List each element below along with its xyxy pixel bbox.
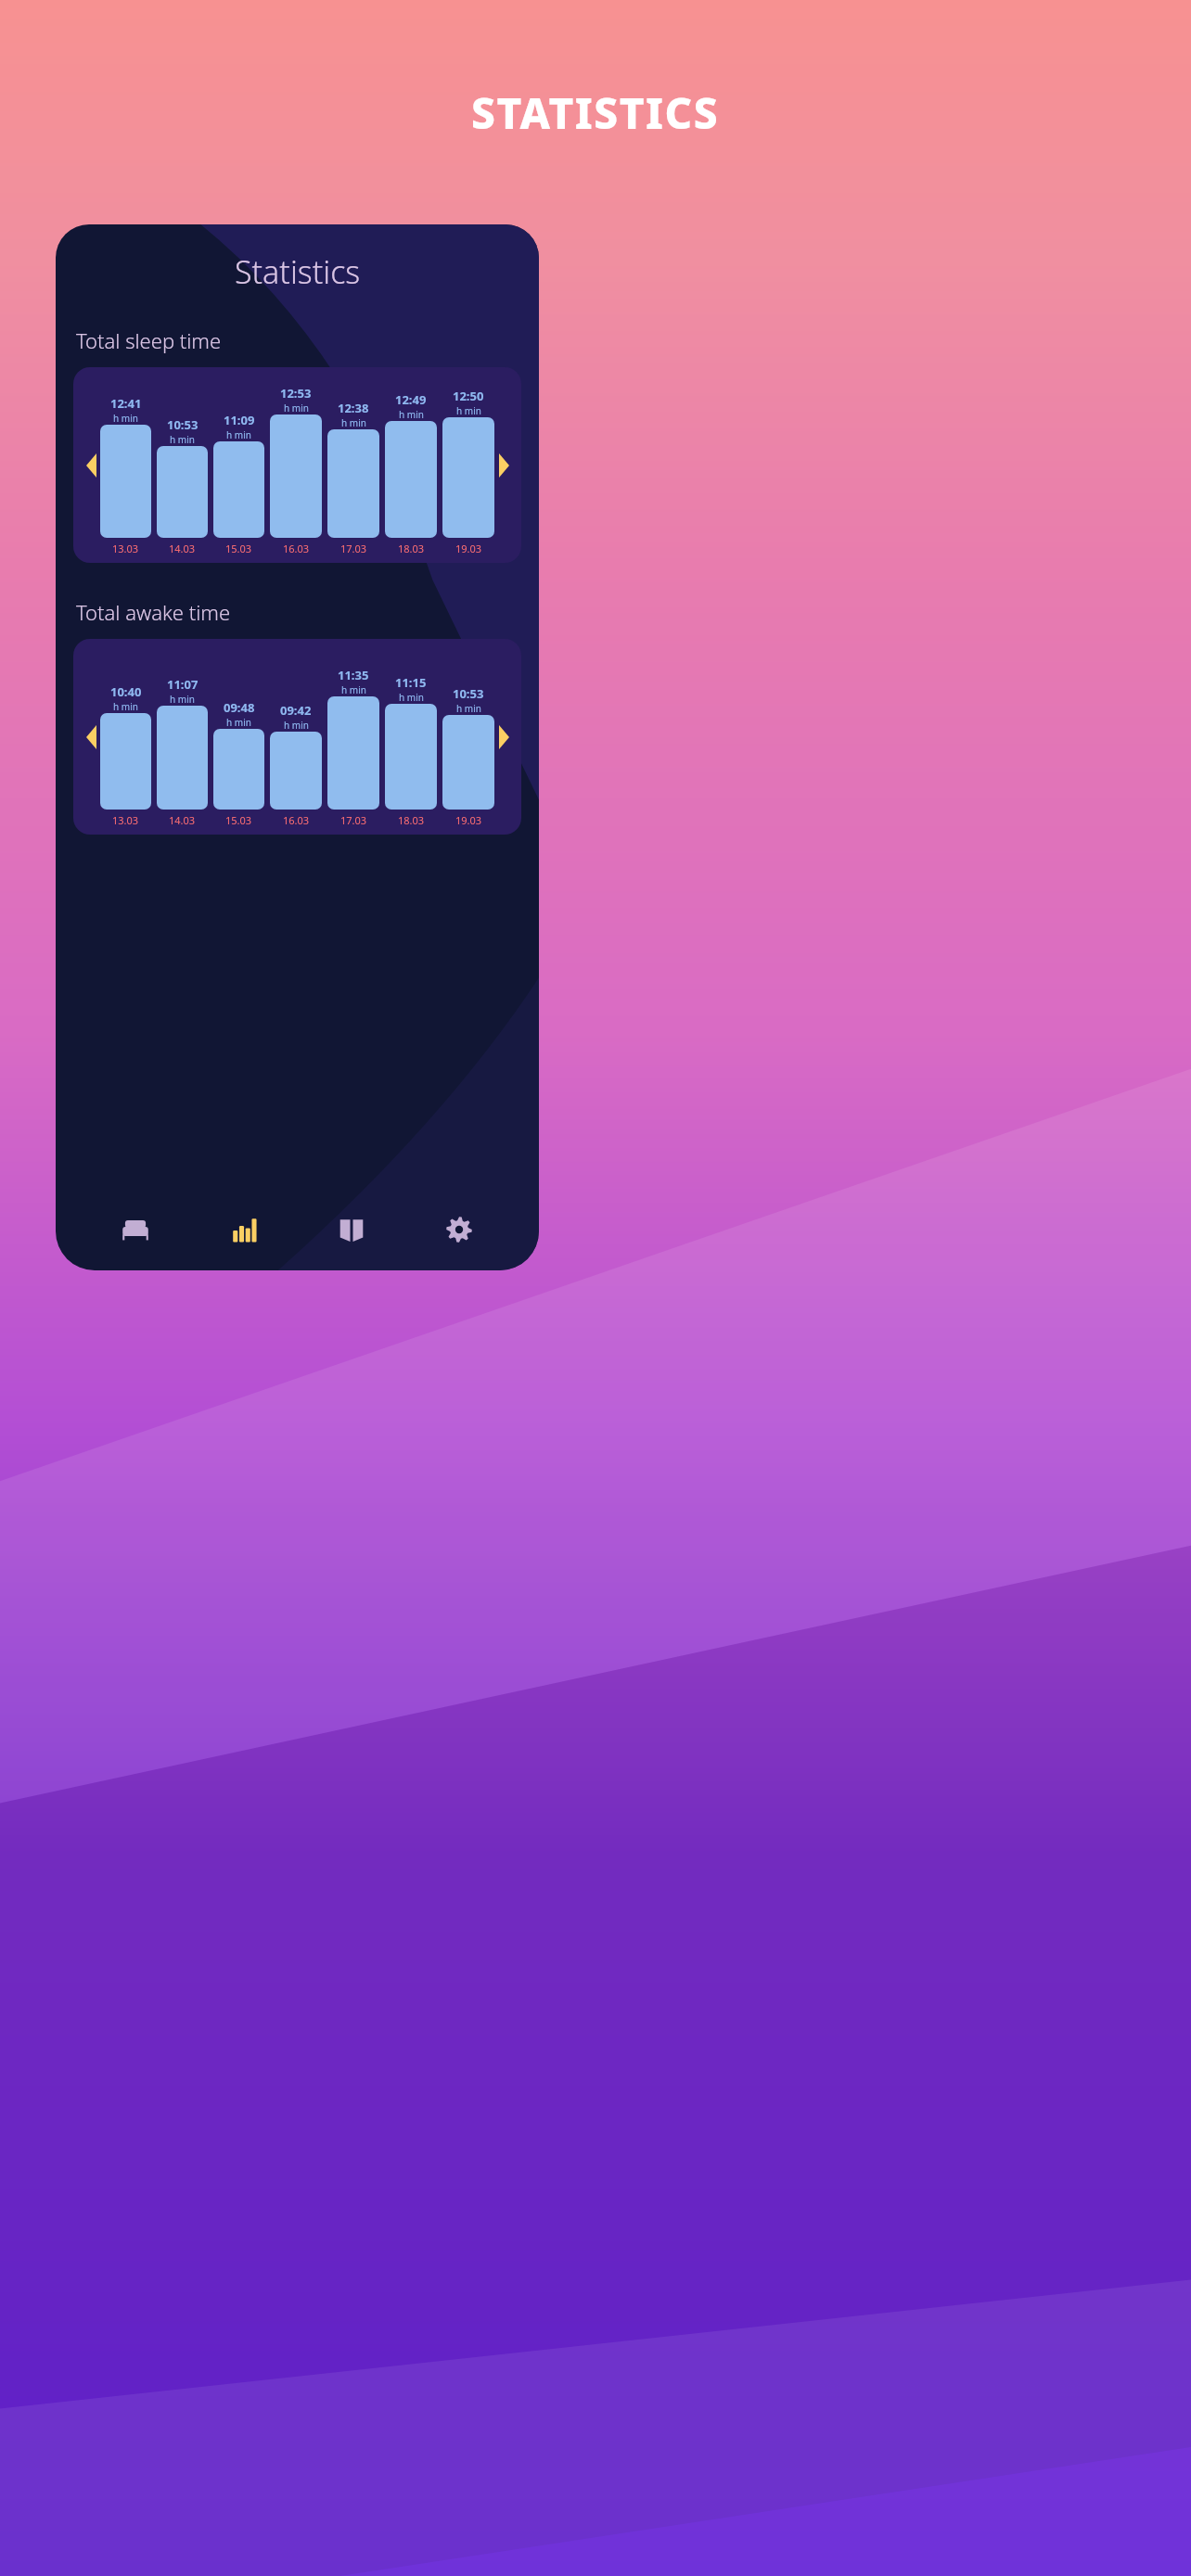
button[interactable]: Previous week [77,723,105,751]
staticText: 12:38 [338,400,369,416]
button[interactable] [270,732,322,810]
button[interactable]: Previous week [77,452,105,479]
staticText: 16.03 [283,542,310,555]
staticText: h min [341,416,366,429]
staticText: 18.03 [398,542,425,555]
staticText: 14.03 [169,813,196,827]
staticText: 11:15 [395,674,427,691]
button[interactable] [442,715,494,810]
staticText: h min [399,408,424,421]
staticText: h min [399,691,424,704]
staticText: Total sleep time [76,326,222,354]
button[interactable] [213,441,264,538]
button[interactable]: Settings [431,1202,487,1257]
staticText: 15.03 [225,813,252,827]
staticText: STATISTICS [471,83,720,142]
staticText: h min [341,683,366,696]
staticText: 13.03 [112,542,139,555]
staticText: 14.03 [169,542,196,555]
staticText: 11:35 [338,667,369,683]
staticText: 13.03 [112,813,139,827]
staticText: 10:53 [453,685,484,702]
staticText: 11:09 [224,412,255,428]
staticText: h min [284,719,309,732]
staticText: 11:07 [167,676,198,693]
button[interactable]: Sleep [108,1202,163,1257]
staticText: 12:49 [395,391,427,408]
button[interactable] [213,729,264,810]
staticText: 15.03 [225,542,252,555]
button[interactable] [157,706,208,810]
button[interactable] [327,696,379,810]
button[interactable]: Statistics [215,1202,271,1257]
staticText: 10:53 [167,416,198,433]
staticText: h min [170,433,195,446]
staticText: h min [456,404,481,417]
button[interactable] [270,414,322,538]
staticText: 12:53 [280,385,312,402]
staticText: h min [170,693,195,706]
staticText: h min [113,700,138,713]
staticText: 19.03 [455,542,482,555]
staticText: 09:48 [224,699,255,716]
staticText: h min [113,412,138,425]
button[interactable] [100,713,151,810]
button[interactable] [385,704,437,810]
button[interactable]: Diary [324,1202,379,1257]
staticText: h min [456,702,481,715]
staticText: Total awake time [76,598,231,626]
staticText: 19.03 [455,813,482,827]
staticText: 12:50 [453,388,484,404]
staticText: 17.03 [340,813,367,827]
staticText: 09:42 [280,702,312,719]
button[interactable] [442,417,494,538]
staticText: 12:41 [110,395,142,412]
button[interactable] [157,446,208,538]
staticText: h min [226,716,251,729]
staticText: h min [284,402,309,414]
button[interactable]: Next week [490,452,518,479]
staticText: 18.03 [398,813,425,827]
staticText: 10:40 [110,683,142,700]
staticText: 16.03 [283,813,310,827]
button[interactable] [385,421,437,538]
staticText: Statistics [235,250,361,293]
button[interactable]: Next week [490,723,518,751]
staticText: 17.03 [340,542,367,555]
button[interactable] [327,429,379,538]
button[interactable] [100,425,151,538]
staticText: h min [226,428,251,441]
